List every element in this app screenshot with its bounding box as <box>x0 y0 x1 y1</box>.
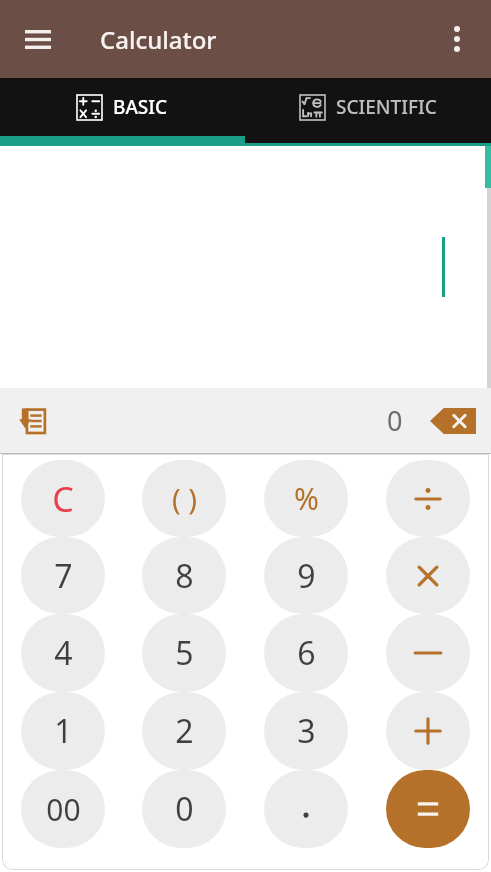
button[interactable]: 4 <box>21 614 105 692</box>
button[interactable]: 1 <box>21 692 105 770</box>
button[interactable]: Open navigation menu <box>14 15 62 63</box>
button[interactable]: C <box>21 460 105 537</box>
button[interactable]: 3 <box>264 692 348 770</box>
staticText: 3 <box>297 709 316 753</box>
staticText: 0 <box>387 402 403 439</box>
staticText: C <box>52 476 74 522</box>
button[interactable]: % <box>264 460 348 537</box>
button[interactable]: 5 <box>142 614 226 692</box>
button[interactable]: 8 <box>142 537 226 614</box>
button[interactable]: SCIENTIFIC <box>245 78 491 136</box>
staticText: 4 <box>54 631 73 675</box>
button[interactable]: Save to history <box>8 397 56 445</box>
button[interactable]: 2 <box>142 692 226 770</box>
staticText: 7 <box>54 554 73 598</box>
staticText: 6 <box>297 631 316 675</box>
staticText: 00 <box>46 789 81 830</box>
staticText: 0 <box>175 787 194 831</box>
button[interactable]: Divide <box>386 460 470 537</box>
button[interactable]: 9 <box>264 537 348 614</box>
staticText: SCIENTIFIC <box>336 94 437 120</box>
button[interactable]: Subtract <box>386 614 470 692</box>
staticText: 5 <box>175 631 194 675</box>
staticText: % <box>294 478 319 519</box>
staticText: 9 <box>297 554 316 598</box>
button[interactable]: 7 <box>21 537 105 614</box>
button[interactable]: Backspace <box>425 397 481 445</box>
button[interactable]: More options <box>433 15 481 63</box>
button[interactable]: Multiply <box>386 537 470 614</box>
button[interactable]: 00 <box>21 770 105 848</box>
staticText: Calculator <box>100 23 217 56</box>
button[interactable]: 0 <box>142 770 226 848</box>
button[interactable]: Decimal point <box>264 770 348 848</box>
staticText: 8 <box>175 554 194 598</box>
staticText: ( ) <box>172 479 197 518</box>
button[interactable]: Add <box>386 692 470 770</box>
button[interactable]: 6 <box>264 614 348 692</box>
staticText: 2 <box>175 709 194 753</box>
button[interactable]: Equals <box>386 770 470 848</box>
button[interactable]: ( ) <box>142 460 226 537</box>
staticText: BASIC <box>113 94 168 120</box>
button[interactable]: BASIC <box>0 78 245 136</box>
staticText: 1 <box>54 709 73 753</box>
